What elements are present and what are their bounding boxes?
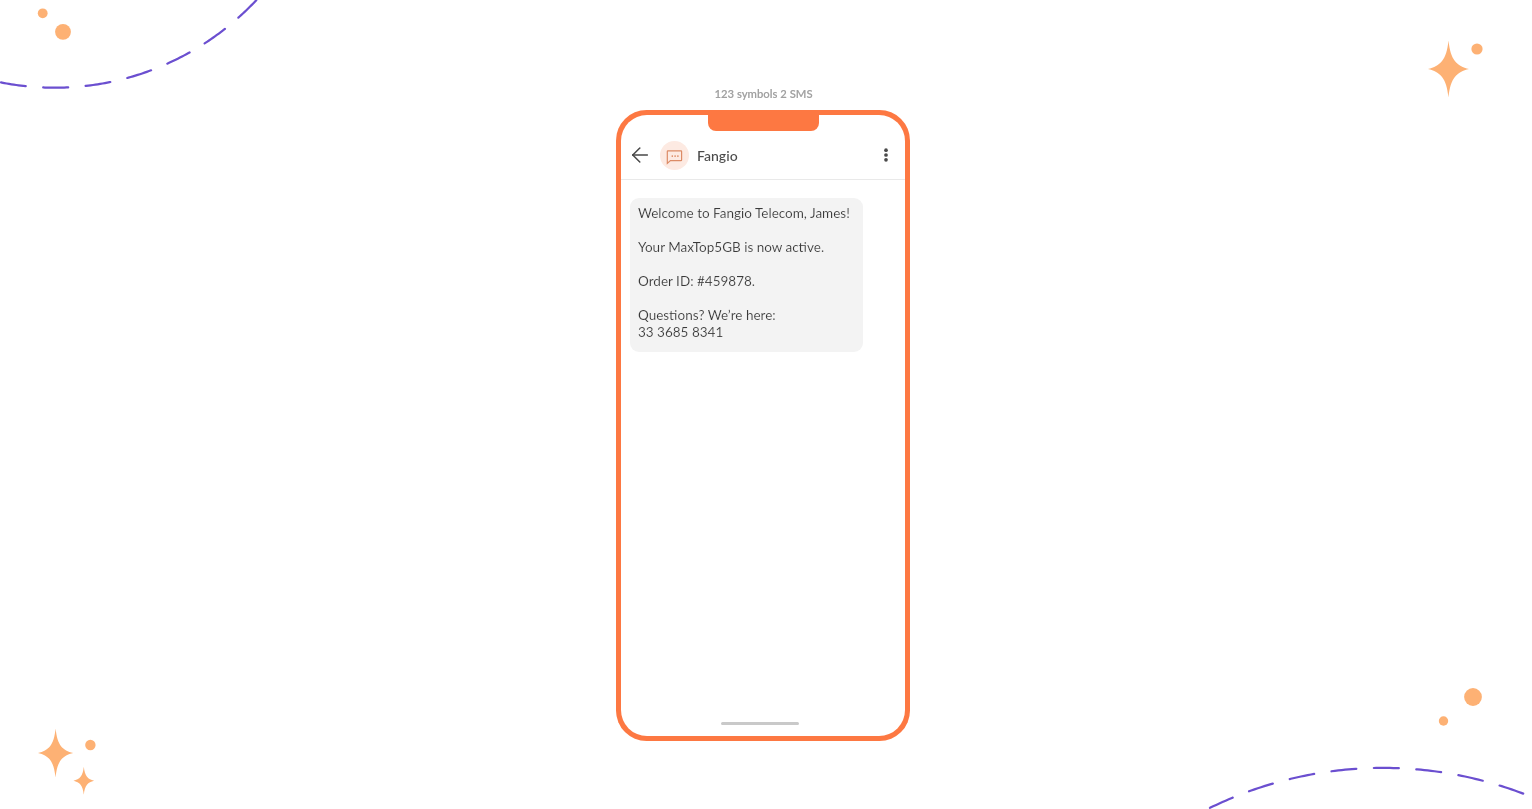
button[interactable]: More options [872, 141, 900, 169]
staticText: Fangio [697, 147, 738, 164]
button[interactable]: Fangio [660, 141, 738, 170]
staticText: 123 symbols 2 SMS [714, 87, 813, 101]
button[interactable]: Back [626, 141, 654, 169]
staticText: Welcome to Fangio Telecom, James! Your M… [638, 205, 850, 340]
button[interactable]: Welcome to Fangio Telecom, James! Your M… [630, 198, 863, 352]
